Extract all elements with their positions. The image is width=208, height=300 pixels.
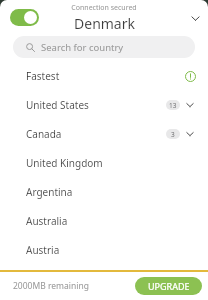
button[interactable]: Argentina xyxy=(0,177,208,206)
staticText: United States xyxy=(26,98,166,112)
staticText: 2000MB remaining xyxy=(13,280,89,292)
staticText: Connection secured xyxy=(71,3,137,13)
button[interactable]: VPN connection toggle, on xyxy=(10,9,39,26)
staticText: Fastest xyxy=(26,69,180,83)
staticText: Search for country xyxy=(41,41,124,54)
staticText: 13 xyxy=(169,101,177,110)
staticText: United Kingdom xyxy=(26,156,180,170)
button[interactable]: Australia xyxy=(0,206,208,235)
staticText: Austria xyxy=(26,243,180,257)
staticText: Australia xyxy=(26,214,180,228)
staticText: 3 xyxy=(171,130,175,139)
staticText: UPGRADE xyxy=(148,280,190,292)
button[interactable]: United States xyxy=(0,90,208,119)
button[interactable]: Austria xyxy=(0,235,208,264)
button[interactable]: Canada xyxy=(0,119,208,148)
button[interactable]: UPGRADE xyxy=(135,277,202,295)
button[interactable]: Search for country xyxy=(13,36,195,58)
staticText: Denmark xyxy=(74,14,135,33)
button[interactable]: Fastest xyxy=(0,61,208,90)
button[interactable]: Expand connection details xyxy=(182,5,208,31)
button[interactable]: United Kingdom xyxy=(0,148,208,177)
staticText: Canada xyxy=(26,127,166,141)
staticText: Argentina xyxy=(26,185,180,199)
